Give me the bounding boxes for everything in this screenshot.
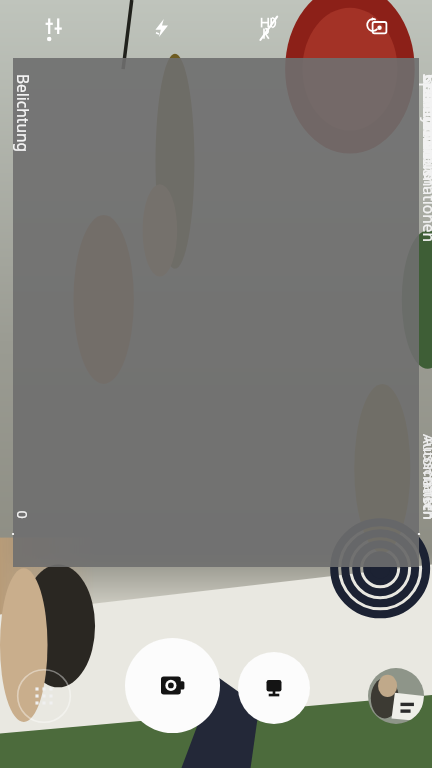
button[interactable]: Modes — [16, 668, 72, 724]
button[interactable]: Switch camera — [324, 0, 432, 56]
staticText: Speicherort — [409, 84, 430, 169]
button[interactable]: HDR off — [216, 0, 324, 56]
staticText: Szenenmodus — [409, 84, 430, 187]
staticText: Beauty-Modus — [409, 84, 430, 190]
button[interactable]: Record video — [238, 652, 310, 724]
button[interactable]: Take photo — [125, 638, 220, 733]
staticText: Standortinformationen — [409, 84, 430, 253]
staticText: Countdown — [409, 84, 430, 169]
staticText: Ausschalten — [409, 447, 429, 530]
staticText: Intern — [409, 487, 429, 530]
staticText: Automatisch — [409, 444, 429, 530]
button[interactable]: Exposure settings — [0, 0, 108, 56]
button[interactable]: Gallery — [368, 668, 424, 724]
staticText: Belichtung — [3, 84, 24, 163]
button[interactable]: Flash — [108, 0, 216, 56]
staticText: 0 — [2, 520, 22, 529]
staticText: Countdown-Ton — [409, 84, 430, 200]
